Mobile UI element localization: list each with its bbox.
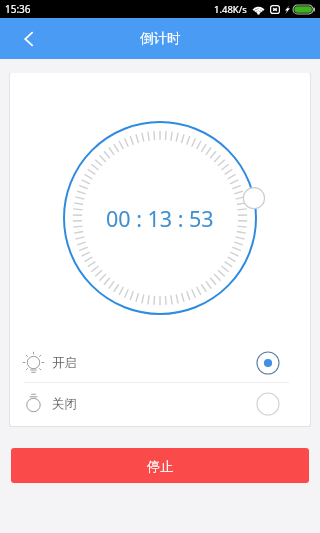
button[interactable]: 开启 bbox=[10, 339, 310, 382]
staticText: 停止 bbox=[147, 458, 173, 474]
button[interactable]: 停止 bbox=[11, 448, 309, 483]
button[interactable]: 关闭 bbox=[10, 383, 310, 426]
staticText: 15:36 bbox=[5, 2, 31, 16]
staticText: 倒计时 bbox=[140, 30, 181, 47]
staticText: 1.48K/s bbox=[214, 3, 247, 16]
staticText: 开启 bbox=[52, 355, 77, 371]
button[interactable]: Back bbox=[8, 18, 49, 59]
staticText: 00 : 13 : 53 bbox=[106, 204, 214, 233]
staticText: 关闭 bbox=[52, 396, 77, 412]
